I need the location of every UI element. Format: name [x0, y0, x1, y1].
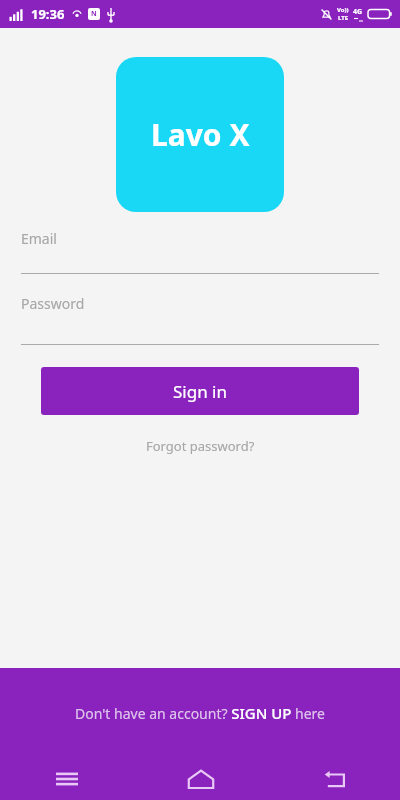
staticText: Lavo X: [151, 114, 250, 155]
button[interactable]: Menu: [0, 757, 134, 800]
staticText: Password: [21, 294, 85, 313]
staticText: Forgot password?: [146, 437, 255, 455]
button[interactable]: Back: [267, 757, 400, 800]
staticText: Sign in: [173, 380, 227, 403]
button[interactable]: Forgot password?: [136, 433, 265, 459]
staticText: 19:36: [31, 5, 65, 23]
staticText: LTE: [338, 14, 349, 22]
button[interactable]: Sign in: [41, 367, 359, 415]
staticText: N: [91, 9, 97, 19]
staticText: Don't have an account? SIGN UP here: [75, 703, 325, 723]
button[interactable]: Don't have an account? SIGN UP here: [0, 668, 400, 757]
staticText: Vo)): [337, 6, 349, 14]
staticText: 4G: [353, 7, 363, 17]
button[interactable]: Home: [134, 757, 267, 800]
staticText: Email: [21, 229, 57, 248]
